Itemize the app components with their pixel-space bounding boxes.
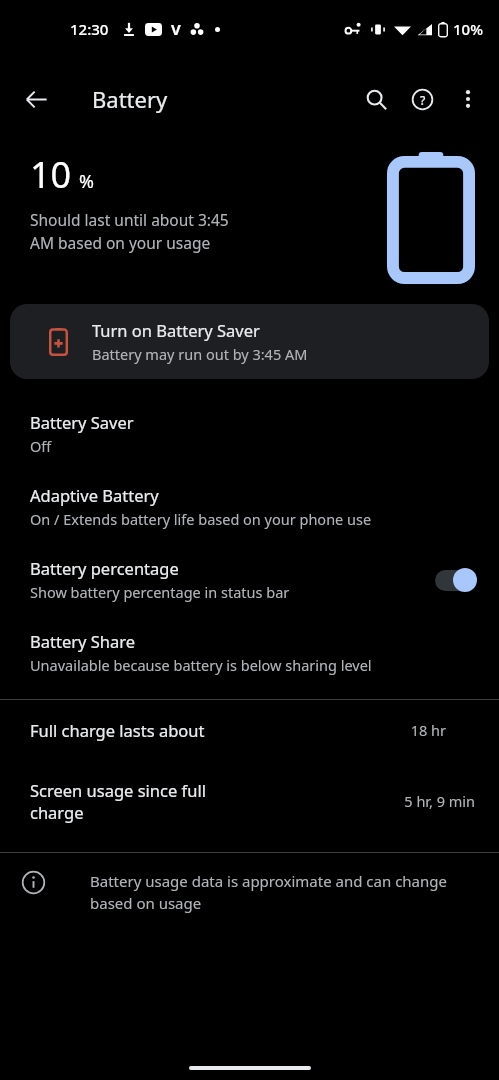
staticText: 10% [453, 19, 483, 39]
staticText: Should last until about 3:45 AM based on… [30, 209, 230, 254]
staticText: Show battery percentage in status bar [30, 582, 290, 602]
staticText: 10 [30, 150, 72, 199]
button[interactable]: Battery percentage toggle [435, 567, 479, 593]
staticText: Battery [92, 84, 168, 114]
staticText: Off [30, 436, 52, 456]
staticText: ? [420, 92, 426, 108]
button[interactable]: Help [399, 76, 445, 122]
staticText: V [171, 19, 181, 39]
button[interactable]: Battery Share [0, 616, 499, 689]
staticText: 5 hr, 9 min [404, 791, 475, 811]
staticText: Adaptive Battery [30, 484, 159, 506]
staticText: % [79, 169, 94, 194]
staticText: Full charge lasts about [30, 719, 205, 741]
staticText: Battery usage data is approximate and ca… [90, 871, 473, 914]
staticText: Screen usage since full charge [30, 779, 217, 823]
staticText: Battery percentage [30, 557, 179, 579]
staticText: Battery may run out by 3:45 AM [92, 344, 308, 364]
staticText: Battery Share [30, 630, 136, 652]
button[interactable]: Search [353, 76, 399, 122]
button[interactable]: Screen usage since full charge [0, 760, 499, 842]
button[interactable]: Turn on Battery Saver [10, 304, 489, 379]
button[interactable]: Back [12, 75, 60, 123]
staticText: Unavailable because battery is below sha… [30, 655, 372, 675]
staticText: On / Extends battery life based on your … [30, 509, 372, 529]
staticText: 18 hr [410, 720, 446, 740]
button[interactable]: Full charge lasts about [0, 700, 499, 760]
button[interactable]: Adaptive Battery [0, 470, 499, 543]
staticText: Battery Saver [30, 411, 134, 433]
staticText: 12:30 [70, 19, 109, 39]
button[interactable]: Battery percentage [0, 543, 499, 616]
button[interactable]: More options [445, 76, 491, 122]
staticText: Turn on Battery Saver [92, 319, 260, 341]
button[interactable]: Battery Saver [0, 397, 499, 470]
